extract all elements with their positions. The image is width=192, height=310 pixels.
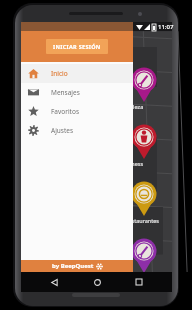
button[interactable]: Back — [44, 272, 64, 292]
button[interactable]: Home — [87, 272, 107, 292]
staticText: Favoritos — [51, 107, 80, 116]
button[interactable]: Favoritos — [21, 102, 133, 121]
staticText: Fitness — [125, 160, 144, 167]
staticText: Mensajes — [51, 88, 80, 97]
button[interactable]: Recent apps — [129, 272, 149, 292]
staticText: Inicio — [51, 69, 68, 78]
staticText: by BeepQuest — [52, 262, 94, 270]
staticText: INICIAR SESIÓN — [53, 43, 101, 50]
staticText: Belleza — [125, 103, 144, 110]
staticText: Ajustes — [51, 126, 74, 135]
staticText: Restaurantes — [125, 217, 159, 224]
button[interactable]: INICIAR SESIÓN — [46, 39, 108, 54]
button[interactable]: by BeepQuest — [21, 260, 133, 272]
staticText: 11:07 — [158, 23, 174, 31]
button[interactable]: Mensajes — [21, 83, 133, 102]
button[interactable]: Inicio — [21, 64, 133, 83]
button[interactable]: Ajustes — [21, 121, 133, 140]
